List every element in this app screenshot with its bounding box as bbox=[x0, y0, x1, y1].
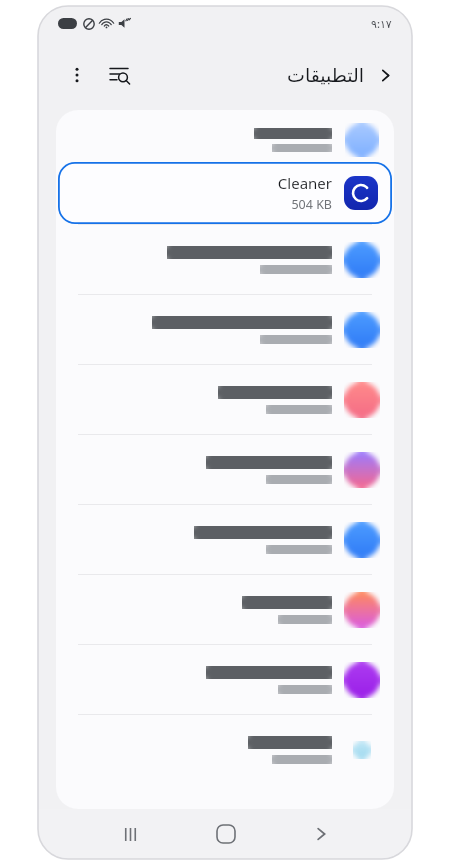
button[interactable] bbox=[56, 645, 394, 714]
button[interactable] bbox=[56, 435, 394, 504]
button[interactable] bbox=[56, 365, 394, 434]
button[interactable]: Back bbox=[273, 809, 368, 859]
button[interactable] bbox=[56, 715, 394, 784]
button[interactable] bbox=[56, 575, 394, 644]
staticText: Cleaner bbox=[277, 173, 332, 193]
button[interactable] bbox=[56, 505, 394, 574]
button[interactable]: Recent apps bbox=[82, 809, 178, 859]
button[interactable] bbox=[56, 295, 394, 364]
staticText: 504 KB bbox=[291, 196, 332, 213]
button[interactable]: Search apps bbox=[100, 56, 138, 94]
button[interactable] bbox=[56, 225, 394, 294]
button[interactable]: Home bbox=[178, 809, 273, 859]
staticText: ٩:١٧ bbox=[371, 16, 392, 31]
button[interactable] bbox=[56, 110, 394, 162]
staticText: التطبيقات bbox=[287, 64, 365, 86]
button[interactable]: التطبيقات bbox=[287, 64, 394, 86]
button[interactable]: More options bbox=[60, 58, 94, 92]
button[interactable]: Cleaner bbox=[58, 162, 392, 224]
